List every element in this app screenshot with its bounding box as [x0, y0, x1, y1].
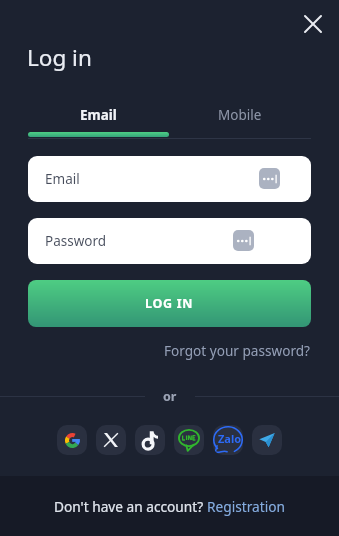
staticText: Mobile — [218, 106, 262, 124]
staticText: Registration — [207, 497, 285, 516]
button[interactable]: Don't have an account? — [54, 497, 285, 516]
staticText: or — [163, 388, 177, 404]
button[interactable]: Sign in with Telegram — [252, 425, 282, 455]
button[interactable]: Mobile — [169, 101, 311, 129]
staticText: LOG IN — [145, 295, 194, 312]
button[interactable]: Sign in with X — [96, 425, 126, 455]
button[interactable]: Password — [28, 218, 311, 264]
staticText: Email — [80, 106, 117, 124]
button[interactable]: Sign in with LINE — [174, 425, 204, 455]
other: Autofill — [233, 230, 254, 251]
button[interactable]: Sign in with Google — [57, 425, 87, 455]
button[interactable]: Email — [28, 156, 311, 202]
other: Autofill — [259, 168, 280, 189]
staticText: Email — [45, 170, 80, 188]
button[interactable]: Close — [297, 8, 329, 40]
button[interactable]: Forgot your password? — [164, 341, 311, 360]
button[interactable]: Email — [28, 101, 169, 129]
staticText: Password — [45, 232, 107, 250]
button[interactable]: Sign in with TikTok — [135, 425, 165, 455]
staticText: Zalo — [218, 431, 242, 446]
staticText: Log in — [27, 42, 92, 73]
staticText: Don't have an account? — [54, 497, 207, 516]
button[interactable]: LOG IN — [28, 280, 311, 327]
button[interactable]: Sign in with Zalo — [213, 425, 243, 455]
